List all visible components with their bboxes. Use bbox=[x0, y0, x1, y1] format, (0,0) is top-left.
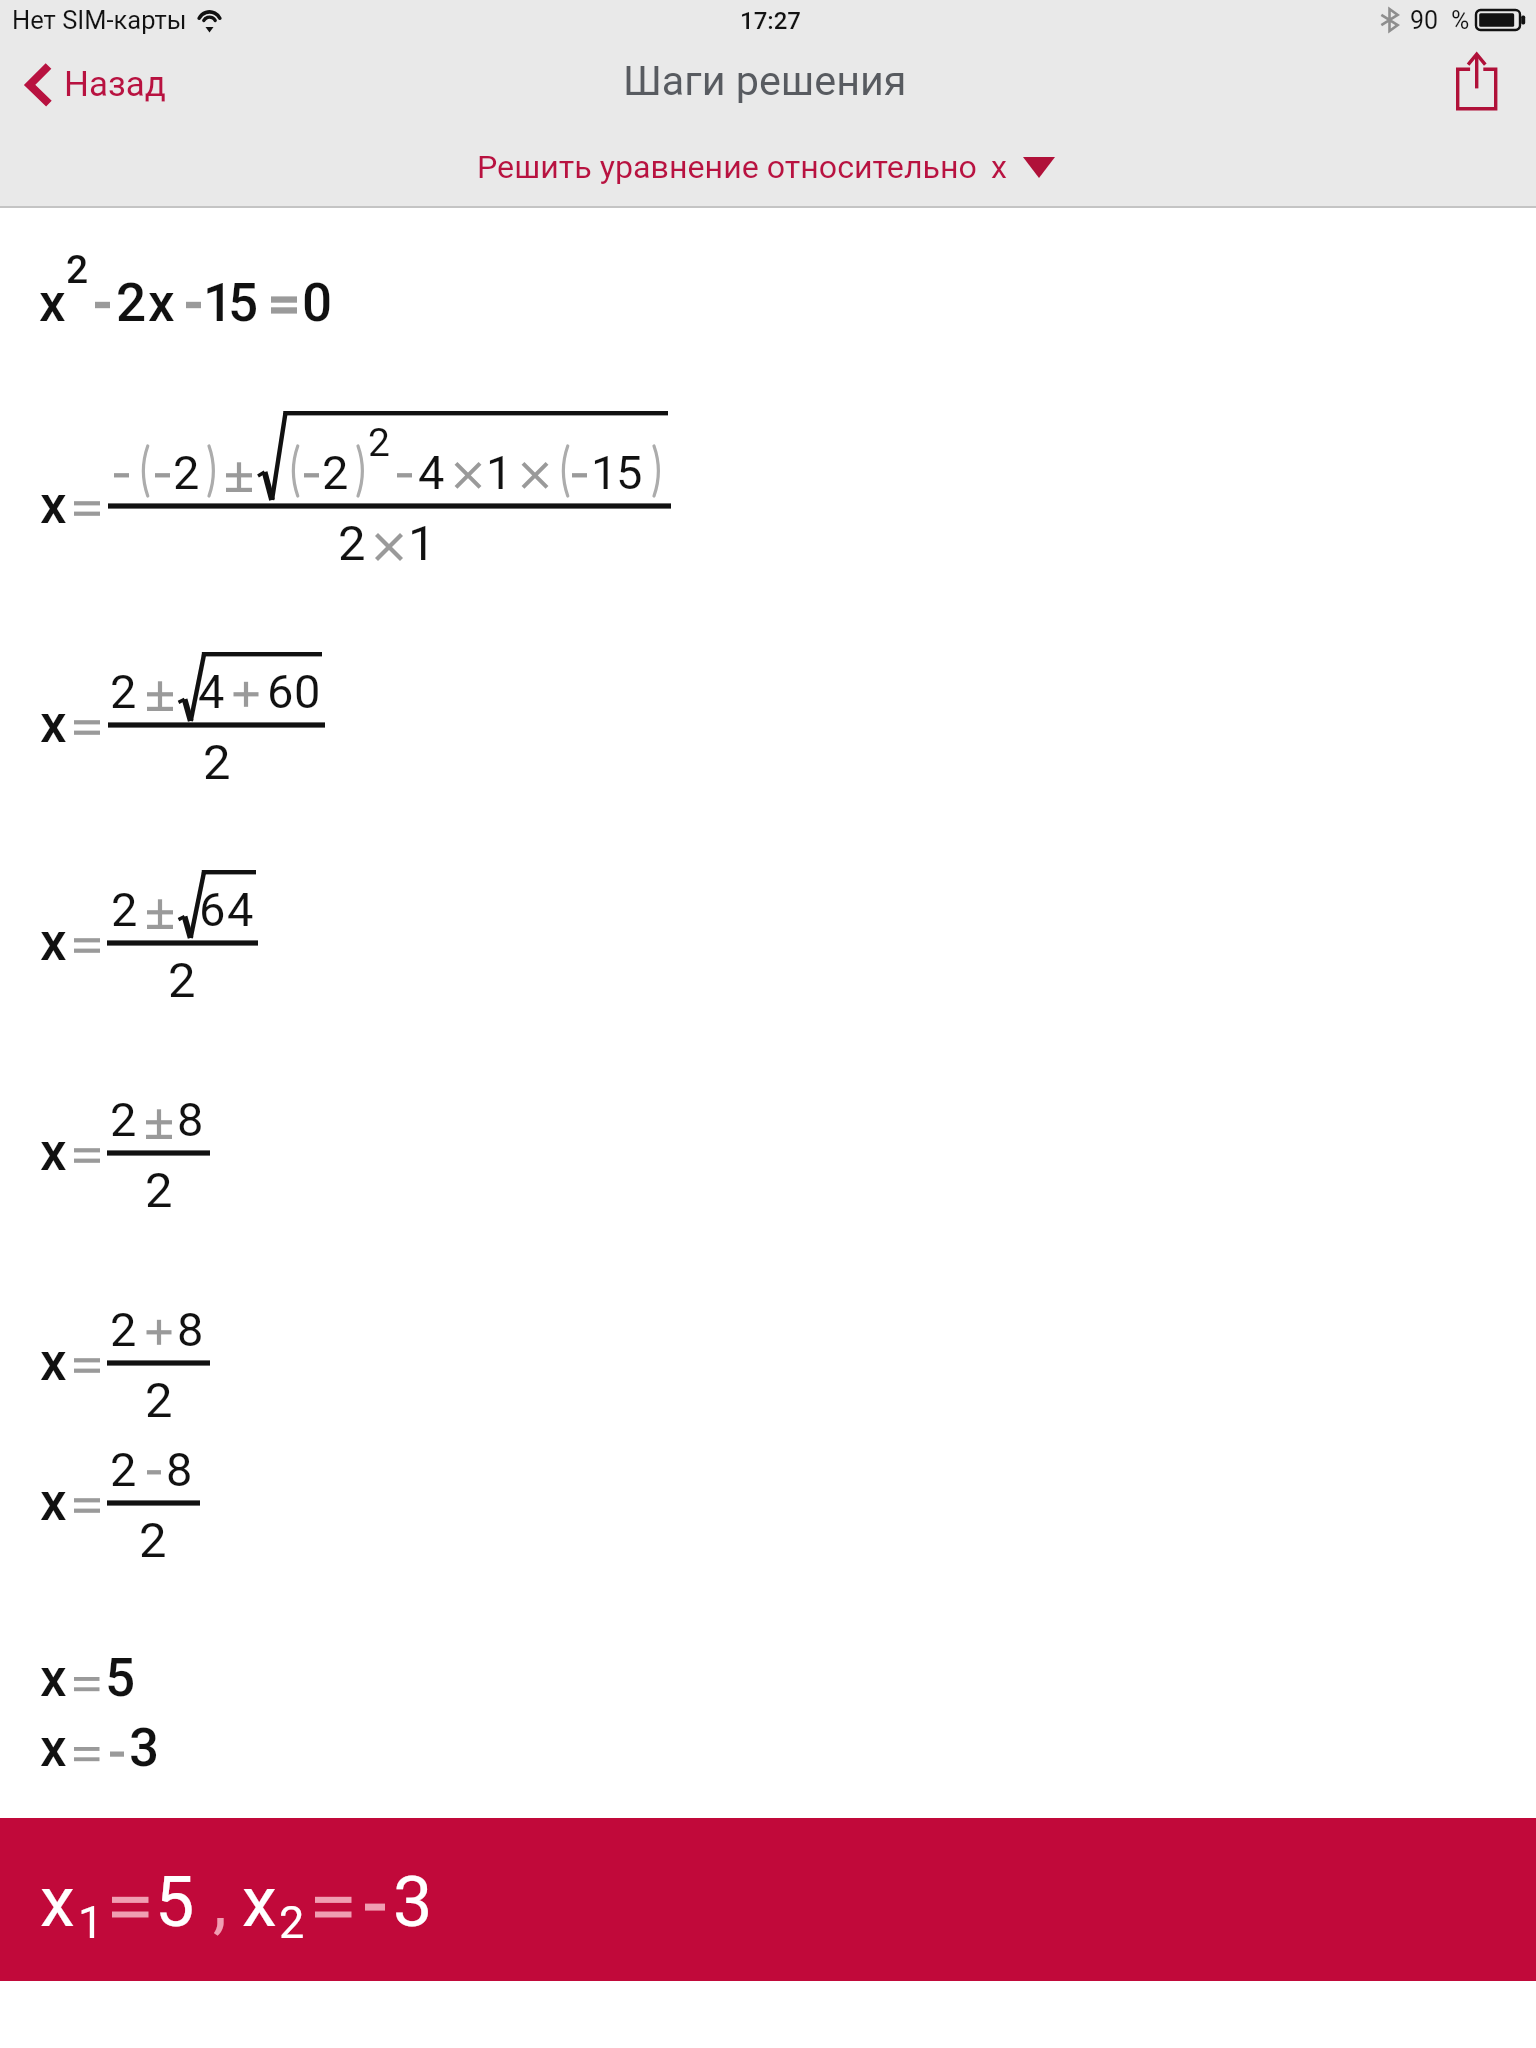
staticText: 1 bbox=[78, 1896, 104, 1949]
staticText: 2 bbox=[66, 247, 89, 293]
staticText: , bbox=[213, 1861, 227, 1943]
staticText: 2 bbox=[279, 1896, 305, 1949]
staticText: x bbox=[40, 693, 67, 755]
staticText: 2 bbox=[139, 1512, 167, 1569]
staticText: x bbox=[40, 1861, 75, 1943]
staticText: 0 bbox=[302, 272, 333, 334]
staticText: 3 bbox=[393, 1861, 433, 1943]
staticText: 2 bbox=[173, 445, 200, 500]
staticText: 2 bbox=[110, 664, 137, 719]
staticText: 6 bbox=[199, 882, 226, 937]
staticText: 2 bbox=[110, 1442, 137, 1497]
staticText: 1 bbox=[203, 272, 234, 334]
button[interactable]: Назад bbox=[14, 50, 184, 118]
staticText: x bbox=[40, 1331, 67, 1393]
button[interactable]: Решить уравнение относительно bbox=[466, 140, 1066, 196]
staticText: 2 bbox=[145, 1162, 173, 1219]
staticText: 1 bbox=[408, 515, 436, 572]
staticText: Шаги решения bbox=[623, 57, 907, 105]
staticText: 8 bbox=[177, 1092, 204, 1147]
staticText: 2 bbox=[322, 445, 349, 500]
staticText: 8 bbox=[166, 1442, 193, 1497]
button[interactable]: Ответ: x1 = 5 , x2 = -3 bbox=[0, 1818, 1536, 1981]
staticText: 5 bbox=[616, 445, 643, 500]
staticText: 2 bbox=[203, 734, 231, 791]
staticText: 2 bbox=[116, 272, 147, 334]
staticText: 2 bbox=[168, 952, 196, 1009]
staticText: 1 bbox=[591, 445, 618, 500]
staticText: Решить уравнение относительно bbox=[477, 148, 977, 186]
staticText: 4 bbox=[418, 445, 445, 500]
staticText: Назад bbox=[64, 64, 166, 105]
staticText: 1 bbox=[486, 445, 513, 500]
button[interactable]: Поделиться bbox=[1437, 42, 1517, 118]
staticText: 4 bbox=[198, 664, 225, 719]
staticText: 5 bbox=[105, 1647, 136, 1709]
staticText: 17:27 bbox=[740, 7, 801, 35]
staticText: 2 bbox=[338, 515, 366, 572]
staticText: x bbox=[991, 148, 1007, 186]
staticText: Нет SIM-карты bbox=[12, 5, 187, 35]
staticText: 2 bbox=[145, 1372, 173, 1429]
staticText: x bbox=[40, 474, 67, 536]
staticText: 90 bbox=[1410, 6, 1439, 35]
staticText: 8 bbox=[177, 1302, 204, 1357]
staticText: x bbox=[40, 1717, 67, 1779]
staticText: x bbox=[40, 1471, 67, 1533]
staticText: 5 bbox=[155, 1861, 195, 1943]
staticText: 0 bbox=[294, 664, 321, 719]
staticText: 2 bbox=[368, 420, 390, 466]
staticText: x bbox=[40, 911, 67, 973]
staticText: x bbox=[39, 272, 66, 334]
staticText: 6 bbox=[267, 664, 294, 719]
staticText: % bbox=[1451, 6, 1470, 35]
staticText: 2 bbox=[110, 1302, 137, 1357]
staticText: x bbox=[148, 272, 175, 334]
staticText: 4 bbox=[227, 882, 254, 937]
staticText: x bbox=[242, 1861, 277, 1943]
staticText: 3 bbox=[129, 1717, 160, 1779]
staticText: 5 bbox=[228, 272, 259, 334]
staticText: x bbox=[40, 1647, 67, 1709]
staticText: 2 bbox=[111, 882, 138, 937]
staticText: x bbox=[40, 1121, 67, 1183]
staticText: 2 bbox=[110, 1092, 137, 1147]
